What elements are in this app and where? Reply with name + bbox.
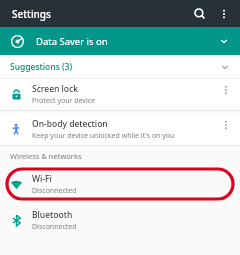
button[interactable]: Wi-Fi (0, 166, 240, 202)
button[interactable]: Suggestions (3) (0, 55, 240, 78)
button[interactable]: Data Saver is on (0, 27, 240, 55)
button[interactable]: Bluetooth (0, 202, 240, 238)
button[interactable]: Screen lock (0, 79, 240, 110)
staticText: Disconnected (32, 222, 77, 232)
staticText: Disconnected (32, 186, 77, 196)
staticText: On-body detection (32, 118, 108, 130)
staticText: Settings (12, 7, 51, 21)
button[interactable]: More options (216, 114, 236, 145)
button[interactable]: Search (188, 2, 212, 26)
staticText: Screen lock (32, 83, 78, 95)
staticText: Suggestions (3) (10, 61, 73, 73)
button[interactable]: On-body detection (0, 114, 240, 145)
staticText: Wireless & networks (10, 151, 82, 161)
button[interactable]: More options (216, 79, 236, 110)
staticText: Bluetooth (32, 209, 73, 221)
button[interactable]: More options (212, 2, 236, 26)
staticText: Keep your device unlocked while it's on … (32, 131, 175, 141)
staticText: Wi-Fi (32, 173, 52, 185)
staticText: Data Saver is on (36, 35, 108, 48)
staticText: Protect your device (32, 96, 96, 106)
